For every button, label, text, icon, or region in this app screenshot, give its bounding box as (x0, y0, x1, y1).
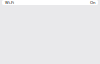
staticText: Wi-Fi (5, 0, 14, 5)
staticText: On (90, 0, 95, 5)
